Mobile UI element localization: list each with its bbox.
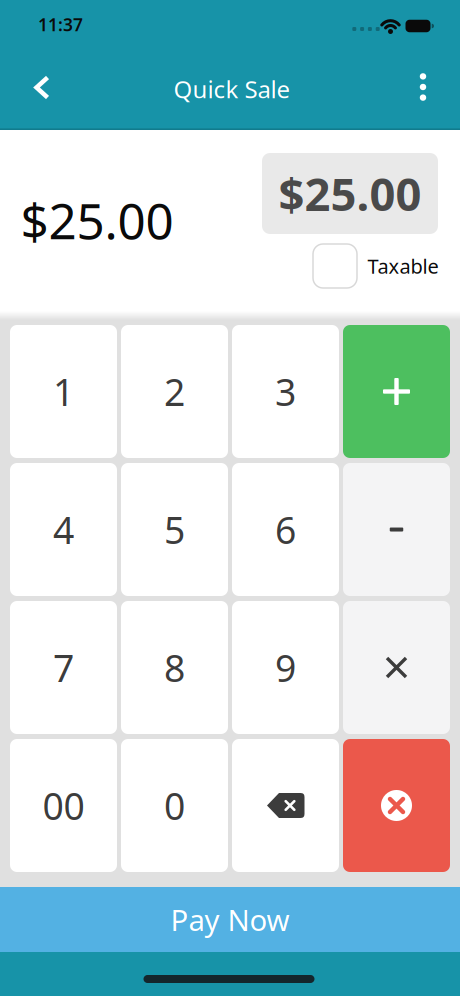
staticText: 6 bbox=[275, 505, 296, 554]
staticText: 00 bbox=[42, 781, 84, 830]
staticText: 0 bbox=[164, 781, 185, 830]
button[interactable]: Add bbox=[343, 325, 450, 458]
staticText: Taxable bbox=[367, 253, 438, 279]
staticText: 5 bbox=[164, 505, 185, 554]
staticText: 2 bbox=[164, 367, 185, 416]
staticText: 9 bbox=[275, 643, 296, 692]
staticText: Pay Now bbox=[170, 900, 289, 939]
staticText: 1 bbox=[53, 367, 74, 416]
staticText: $25.00 bbox=[278, 163, 421, 224]
button[interactable]: 2 bbox=[121, 325, 228, 458]
button[interactable]: 8 bbox=[121, 601, 228, 734]
button[interactable]: 00 bbox=[10, 739, 117, 872]
button[interactable]: Backspace bbox=[232, 739, 339, 872]
button[interactable]: 9 bbox=[232, 601, 339, 734]
staticText: 11:37 bbox=[38, 13, 83, 36]
button[interactable]: Subtract bbox=[343, 463, 450, 596]
button[interactable]: 1 bbox=[10, 325, 117, 458]
staticText: 8 bbox=[164, 643, 185, 692]
staticText: 7 bbox=[53, 643, 74, 692]
button[interactable]: Clear bbox=[343, 739, 450, 872]
staticText: Quick Sale bbox=[173, 73, 290, 105]
button[interactable]: Back bbox=[18, 65, 62, 109]
button[interactable]: 3 bbox=[232, 325, 339, 458]
button[interactable]: Taxable bbox=[313, 244, 357, 288]
staticText: 4 bbox=[53, 505, 74, 554]
staticText: $25.00 bbox=[20, 187, 173, 253]
button[interactable]: Multiply bbox=[343, 601, 450, 734]
button[interactable]: Pay Now bbox=[0, 887, 460, 952]
button[interactable]: 6 bbox=[232, 463, 339, 596]
button[interactable]: 5 bbox=[121, 463, 228, 596]
button[interactable]: 4 bbox=[10, 463, 117, 596]
button[interactable]: 7 bbox=[10, 601, 117, 734]
button[interactable]: 0 bbox=[121, 739, 228, 872]
button[interactable]: More options bbox=[401, 65, 445, 109]
staticText: 3 bbox=[275, 367, 296, 416]
